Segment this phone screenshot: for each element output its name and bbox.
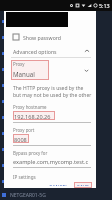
button[interactable]: Proxy port [13, 127, 91, 146]
staticText: Show password [23, 34, 62, 41]
staticText: 8008 [14, 136, 27, 144]
staticText: NETGEAR01-5G [10, 192, 46, 199]
staticText: IP settings [13, 174, 36, 180]
button[interactable]: Bypass proxy for [13, 150, 91, 168]
button[interactable] [0, 13, 112, 29]
button[interactable] [0, 45, 112, 61]
staticText: 5:13 [99, 2, 110, 9]
staticText: but may not be used by the other apps. [13, 92, 92, 99]
staticText: Manual [13, 70, 35, 78]
staticText: The HTTP proxy is used by the browser [13, 85, 92, 92]
staticText: Advanced options [13, 48, 57, 55]
button[interactable] [0, 173, 112, 189]
button[interactable] [0, 125, 112, 141]
staticText: Proxy hostname [13, 104, 47, 110]
button[interactable] [0, 77, 112, 93]
button[interactable]: Show password [4, 31, 96, 43]
staticText: Proxy [13, 61, 25, 67]
staticText: example.com,mycomp.test.com,l [13, 158, 91, 166]
button[interactable] [0, 141, 112, 157]
button[interactable]: Advanced options [4, 45, 96, 57]
button[interactable]: CANCEL [46, 182, 71, 188]
button[interactable] [0, 109, 112, 125]
button[interactable]: IP settings [4, 172, 96, 182]
staticText: 192.168.20.26 [14, 113, 51, 121]
staticText: SAVE [77, 184, 89, 186]
button[interactable]: Proxy hostname [13, 104, 91, 123]
staticText: CANCEL [49, 184, 68, 186]
button[interactable]: Proxy [11, 60, 91, 80]
button[interactable] [0, 29, 112, 45]
staticText: Bypass proxy for [13, 150, 48, 156]
staticText: Proxy port [13, 127, 35, 133]
button[interactable] [0, 157, 112, 173]
button[interactable]: NETGEAR01-5G [2, 190, 112, 200]
button[interactable] [0, 93, 112, 109]
button[interactable] [0, 61, 112, 77]
button[interactable]: SAVE [74, 182, 92, 188]
